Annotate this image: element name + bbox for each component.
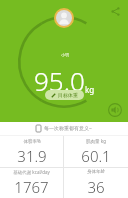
button[interactable]: Profile: [56, 10, 72, 26]
staticText: 31.9: [17, 146, 47, 166]
staticText: 1767: [14, 177, 49, 197]
staticText: 体脂率%: [23, 138, 41, 144]
staticText: 目标体重: [58, 92, 78, 98]
button[interactable]: 肌肉量 kg: [64, 136, 128, 167]
staticText: 36: [87, 177, 105, 197]
staticText: 身体年龄: [87, 169, 105, 175]
staticText: 每一次称重都有意义~: [44, 125, 92, 132]
button[interactable]: 基础代谢 kcal/day: [0, 168, 63, 198]
staticText: kg: [85, 84, 95, 95]
button[interactable]: 体脂率%: [0, 136, 63, 167]
staticText: 肌肉量 kg: [86, 138, 106, 144]
staticText: 小明: [61, 52, 69, 57]
staticText: 95.0: [34, 63, 85, 98]
button[interactable]: Sound: [108, 103, 122, 117]
staticText: 60.1: [81, 146, 111, 166]
button[interactable]: 目标体重: [45, 90, 84, 100]
staticText: 基础代谢 kcal/day: [13, 169, 50, 175]
button[interactable]: Share: [107, 3, 123, 19]
button[interactable]: 每一次称重都有意义~: [0, 122, 128, 135]
button[interactable]: 身体年龄: [64, 168, 128, 198]
